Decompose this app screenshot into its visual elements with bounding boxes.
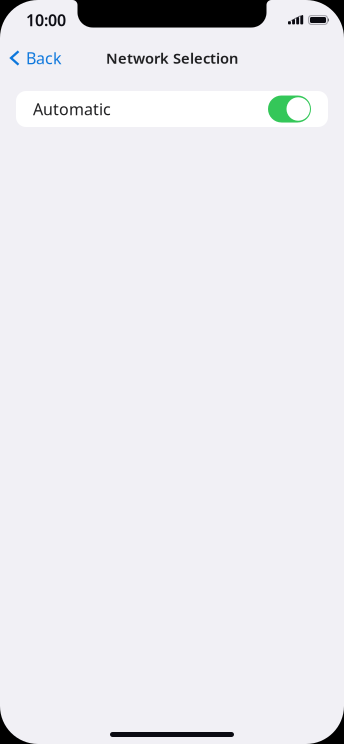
staticText: 10:00 <box>26 9 66 31</box>
button[interactable]: Automatic <box>16 91 328 127</box>
staticText: Back <box>26 47 62 69</box>
staticText: Automatic <box>33 98 111 120</box>
staticText: Network Selection <box>106 48 238 68</box>
button[interactable]: Back <box>0 40 70 76</box>
